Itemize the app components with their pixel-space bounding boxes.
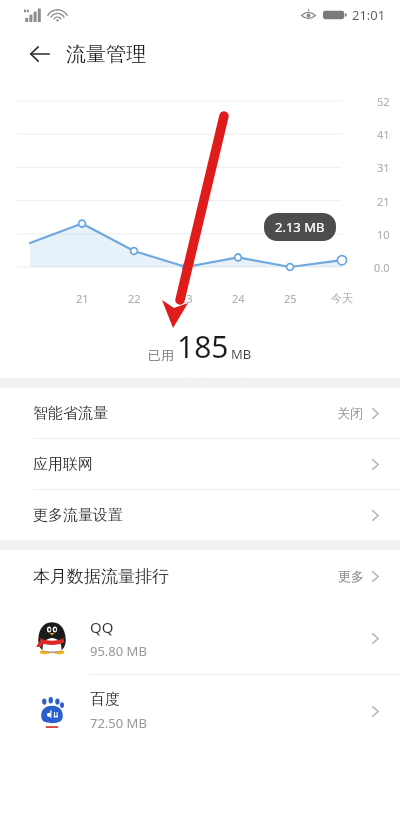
staticText: 关闭 (337, 405, 363, 421)
staticText: 流量管理 (66, 42, 146, 67)
staticText: 25 (284, 291, 297, 306)
button[interactable]: 更多流量设置 (0, 490, 400, 540)
staticText: 21:01 (352, 6, 386, 24)
staticText: 24 (232, 291, 245, 306)
staticText: 0.0 (374, 260, 390, 275)
staticText: 智能省流量 (33, 404, 108, 423)
staticText: 今天 (331, 291, 353, 305)
button[interactable]: 本月数据流量排行 (0, 550, 400, 602)
button[interactable]: 智能省流量 (0, 388, 400, 438)
staticText: QQ (90, 617, 114, 637)
staticText: 185 (177, 326, 229, 367)
staticText: 95.80 MB (90, 642, 147, 660)
staticText: 41 (377, 127, 390, 142)
staticText: 22 (128, 291, 141, 306)
button[interactable]: QQ (0, 602, 400, 674)
staticText: 本月数据流量排行 (33, 566, 169, 587)
staticText: 更多 (338, 568, 364, 584)
staticText: 10 (377, 227, 390, 242)
staticText: 应用联网 (33, 455, 93, 474)
staticText: 21 (377, 194, 390, 209)
button[interactable]: 百度 (0, 675, 400, 747)
staticText: 已用 (148, 347, 174, 363)
staticText: MB (231, 345, 252, 363)
button[interactable]: 应用联网 (0, 439, 400, 489)
staticText: 72.50 MB (90, 714, 147, 732)
staticText: 52 (377, 94, 390, 109)
staticText: 2.13 MB (275, 218, 325, 236)
staticText: 31 (377, 160, 390, 175)
staticText: 更多流量设置 (33, 506, 123, 525)
button[interactable]: Back (22, 36, 58, 72)
staticText: 21 (76, 291, 89, 306)
staticText: 23 (180, 291, 193, 306)
staticText: 百度 (90, 690, 120, 709)
